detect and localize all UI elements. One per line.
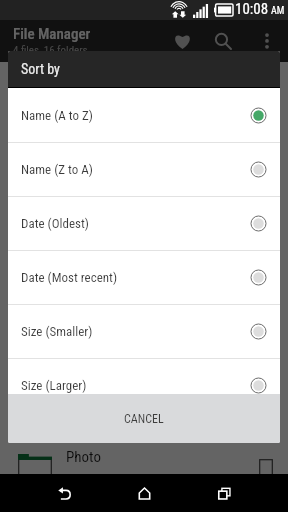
staticText: AM [271, 5, 285, 17]
button[interactable]: Date (Oldest) [8, 197, 280, 250]
staticText: 4 files, 16 folders [13, 44, 88, 57]
staticText: Date (Oldest) [21, 216, 89, 231]
staticText: 10:08 [235, 0, 269, 18]
button[interactable]: More options [253, 25, 281, 57]
button[interactable]: Search [207, 25, 239, 57]
staticText: Size (Smaller) [21, 324, 93, 339]
staticText: Name (Z to A) [21, 162, 93, 177]
button[interactable]: Recent apps [200, 474, 248, 512]
button[interactable]: Back [40, 474, 88, 512]
staticText: Name (A to Z) [21, 108, 93, 123]
staticText: Sort by [21, 61, 60, 77]
staticText: CANCEL [124, 412, 164, 426]
button[interactable]: Name (A to Z) [8, 88, 280, 142]
staticText: Date (Most recent) [21, 270, 118, 285]
button[interactable]: Home [120, 474, 168, 512]
button[interactable]: Photo [0, 444, 288, 474]
button[interactable]: CANCEL [8, 394, 280, 443]
button[interactable]: Name (Z to A) [8, 143, 280, 196]
button[interactable]: Size (Smaller) [8, 305, 280, 358]
button[interactable]: Size (Larger) [8, 359, 280, 394]
staticText: File Manager [13, 25, 91, 43]
staticText: Photo [66, 448, 101, 466]
button[interactable]: Favorites [165, 25, 199, 57]
button[interactable]: Date (Most recent) [8, 251, 280, 304]
staticText: Size (Larger) [21, 378, 87, 393]
